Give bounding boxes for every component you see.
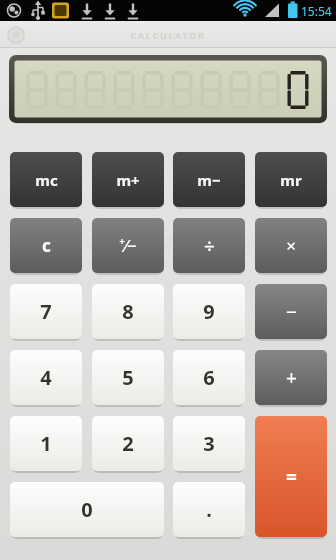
staticText: ⁺⁄− <box>119 234 137 257</box>
staticText: + <box>286 365 297 391</box>
staticText: = <box>286 464 297 490</box>
button[interactable]: m+ <box>92 152 164 207</box>
staticText: CALCULATOR <box>130 29 206 41</box>
staticText: 2 <box>122 430 134 457</box>
button[interactable]: 8 <box>92 284 164 339</box>
button[interactable]: = <box>255 416 327 537</box>
staticText: 4 <box>40 364 52 391</box>
staticText: m− <box>197 170 221 190</box>
button[interactable]: 0 <box>10 482 164 537</box>
staticText: 8 <box>122 298 134 325</box>
button[interactable]: . <box>173 482 245 537</box>
button[interactable]: ÷ <box>173 218 245 273</box>
staticText: 15:54 <box>301 3 332 19</box>
staticText: 3 <box>203 430 215 457</box>
button[interactable]: m− <box>173 152 245 207</box>
staticText: m+ <box>116 170 140 190</box>
button[interactable]: 5 <box>92 350 164 405</box>
button[interactable]: ⁺⁄− <box>92 218 164 273</box>
button[interactable]: 3 <box>173 416 245 471</box>
staticText: − <box>286 299 297 325</box>
button[interactable]: 4 <box>10 350 82 405</box>
staticText: mr <box>280 170 302 190</box>
staticText: mc <box>35 170 58 190</box>
staticText: 1 <box>40 430 52 457</box>
button[interactable]: 6 <box>173 350 245 405</box>
staticText: 7 <box>40 298 52 325</box>
staticText: 0 <box>81 496 93 523</box>
button[interactable]: 2 <box>92 416 164 471</box>
staticText: c <box>42 234 51 257</box>
staticText: 5 <box>122 364 134 391</box>
button[interactable]: App icon <box>7 26 25 44</box>
button[interactable]: 7 <box>10 284 82 339</box>
staticText: 9 <box>203 298 215 325</box>
staticText: . <box>206 496 212 523</box>
button[interactable]: 9 <box>173 284 245 339</box>
button[interactable]: mr <box>255 152 327 207</box>
button[interactable]: + <box>255 350 327 405</box>
button[interactable]: × <box>255 218 327 273</box>
button[interactable]: 1 <box>10 416 82 471</box>
staticText: 6 <box>203 364 215 391</box>
staticText: ÷ <box>204 233 215 259</box>
button[interactable]: mc <box>10 152 82 207</box>
button[interactable]: − <box>255 284 327 339</box>
staticText: × <box>286 234 296 257</box>
button[interactable]: c <box>10 218 82 273</box>
